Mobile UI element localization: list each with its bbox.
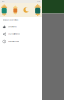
button[interactable]: Send wishes <box>0 23 42 30</box>
staticText: LTE <box>37 1 40 2</box>
staticText: Share with friends <box>8 33 20 35</box>
staticText: Eid Mubarak Greetings <box>3 19 19 21</box>
button[interactable]: Share with friends <box>0 30 42 38</box>
staticText: Send wishes <box>8 26 17 28</box>
button[interactable]: Copy message <box>0 38 42 45</box>
staticText: 9:41 <box>2 1 5 2</box>
staticText: Copy message <box>8 41 19 42</box>
